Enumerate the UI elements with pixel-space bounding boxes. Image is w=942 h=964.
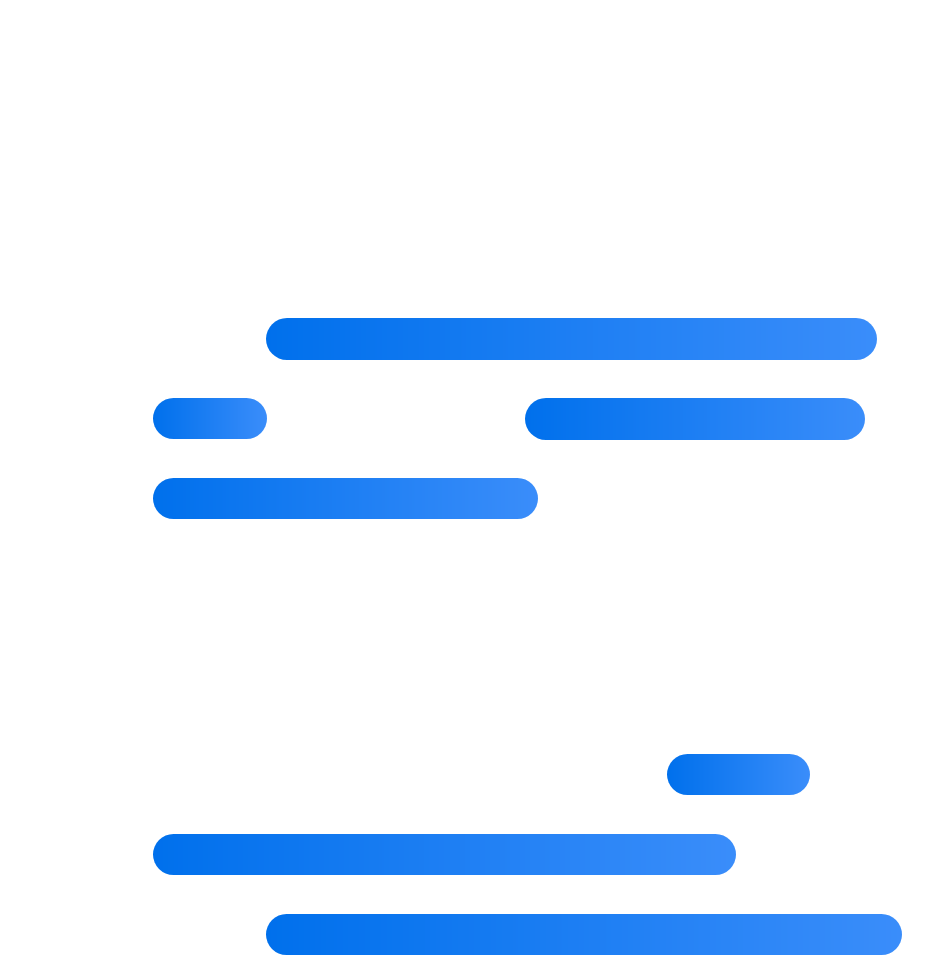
- other: Loading content: [0, 0, 942, 964]
